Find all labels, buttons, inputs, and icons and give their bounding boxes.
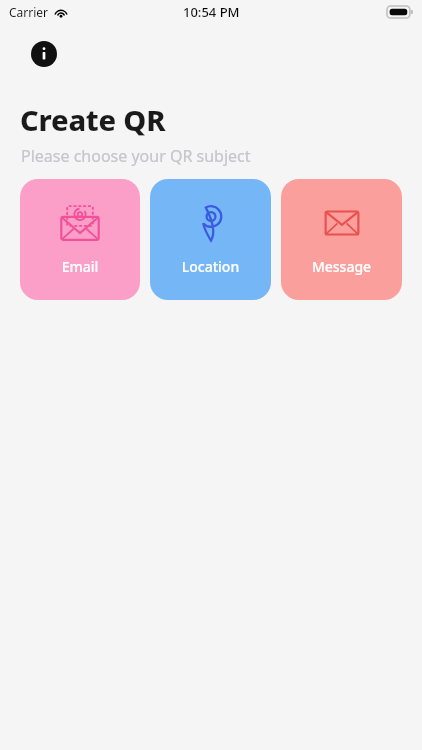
staticText: Email [20,257,140,276]
staticText: Message [281,257,402,276]
staticText: Please choose your QR subject [21,145,251,167]
staticText: Carrier [9,4,49,20]
button[interactable]: Location [150,179,271,300]
staticText: Create QR [20,100,166,139]
staticText: Location [150,257,271,276]
button[interactable]: Message [281,179,402,300]
button[interactable]: Email [20,179,140,300]
staticText: 10:54 PM [183,3,240,21]
button[interactable]: Info [31,41,57,67]
